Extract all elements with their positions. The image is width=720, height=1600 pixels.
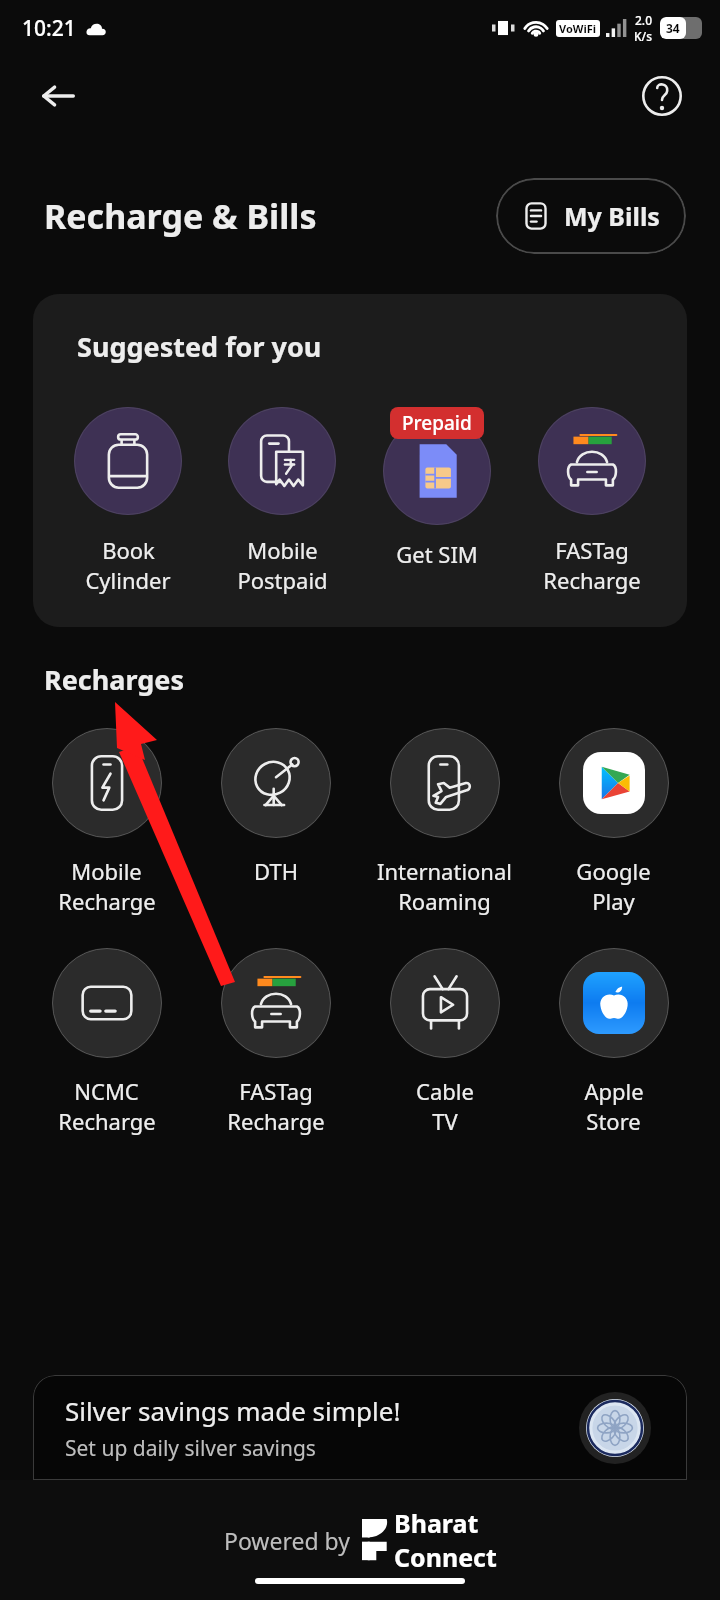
staticText: Play [592,886,635,916]
button[interactable]: Apple [529,948,698,1136]
staticText: My Bills [564,199,660,233]
staticText: Prepaid [402,410,472,436]
button[interactable]: FASTag [514,405,669,597]
button[interactable]: Back [30,68,86,124]
button[interactable]: DTH [191,728,360,886]
button[interactable]: Mobile [205,405,359,597]
staticText: Recharges [44,661,185,698]
staticText: Get SIM [396,539,478,569]
staticText: Mobile [247,535,318,565]
button[interactable]: Help [634,68,690,124]
staticText: DTH [254,856,298,886]
staticText: Postpaid [237,565,328,595]
staticText: Suggested for you [77,328,322,365]
staticText: 34 [666,20,680,36]
staticText: Store [586,1106,641,1136]
staticText: 10:21 [22,14,76,43]
staticText: 2.0 [635,12,652,28]
button[interactable]: Cable [360,948,529,1136]
button[interactable]: FASTag [191,948,360,1136]
staticText: Recharge [227,1106,325,1136]
staticText: Bharat [394,1506,479,1540]
staticText: Cable [416,1076,474,1106]
staticText: International [377,856,512,886]
button[interactable]: Silver savings made simple! [33,1375,687,1480]
staticText: Powered by [224,1525,350,1556]
button[interactable]: My Bills [496,178,686,254]
staticText: Book [102,535,155,565]
button[interactable]: Mobile [22,728,191,916]
staticText: Apple [584,1076,644,1106]
staticText: Cylinder [85,565,171,595]
staticText: FASTag [239,1076,313,1106]
button[interactable]: Prepaid [359,405,514,571]
staticText: Google [576,856,651,886]
staticText: Connect [394,1540,497,1574]
staticText: TV [432,1106,458,1136]
button[interactable]: NCMC [22,948,191,1136]
staticText: NCMC [74,1076,139,1106]
button[interactable]: Google [529,728,698,916]
staticText: Recharge & Bills [44,193,317,239]
staticText: Roaming [398,886,491,916]
staticText: Set up daily silver savings [65,1434,316,1463]
staticText: Silver savings made simple! [65,1393,401,1428]
staticText: Recharge [543,565,641,595]
staticText: Mobile [71,856,142,886]
button[interactable]: International [360,728,529,916]
staticText: Recharge [58,1106,156,1136]
staticText: K/s [634,28,653,44]
staticText: FASTag [555,535,629,565]
button[interactable]: Book [51,405,205,597]
staticText: Recharge [58,886,156,916]
staticText: VoWiFi [559,21,597,36]
